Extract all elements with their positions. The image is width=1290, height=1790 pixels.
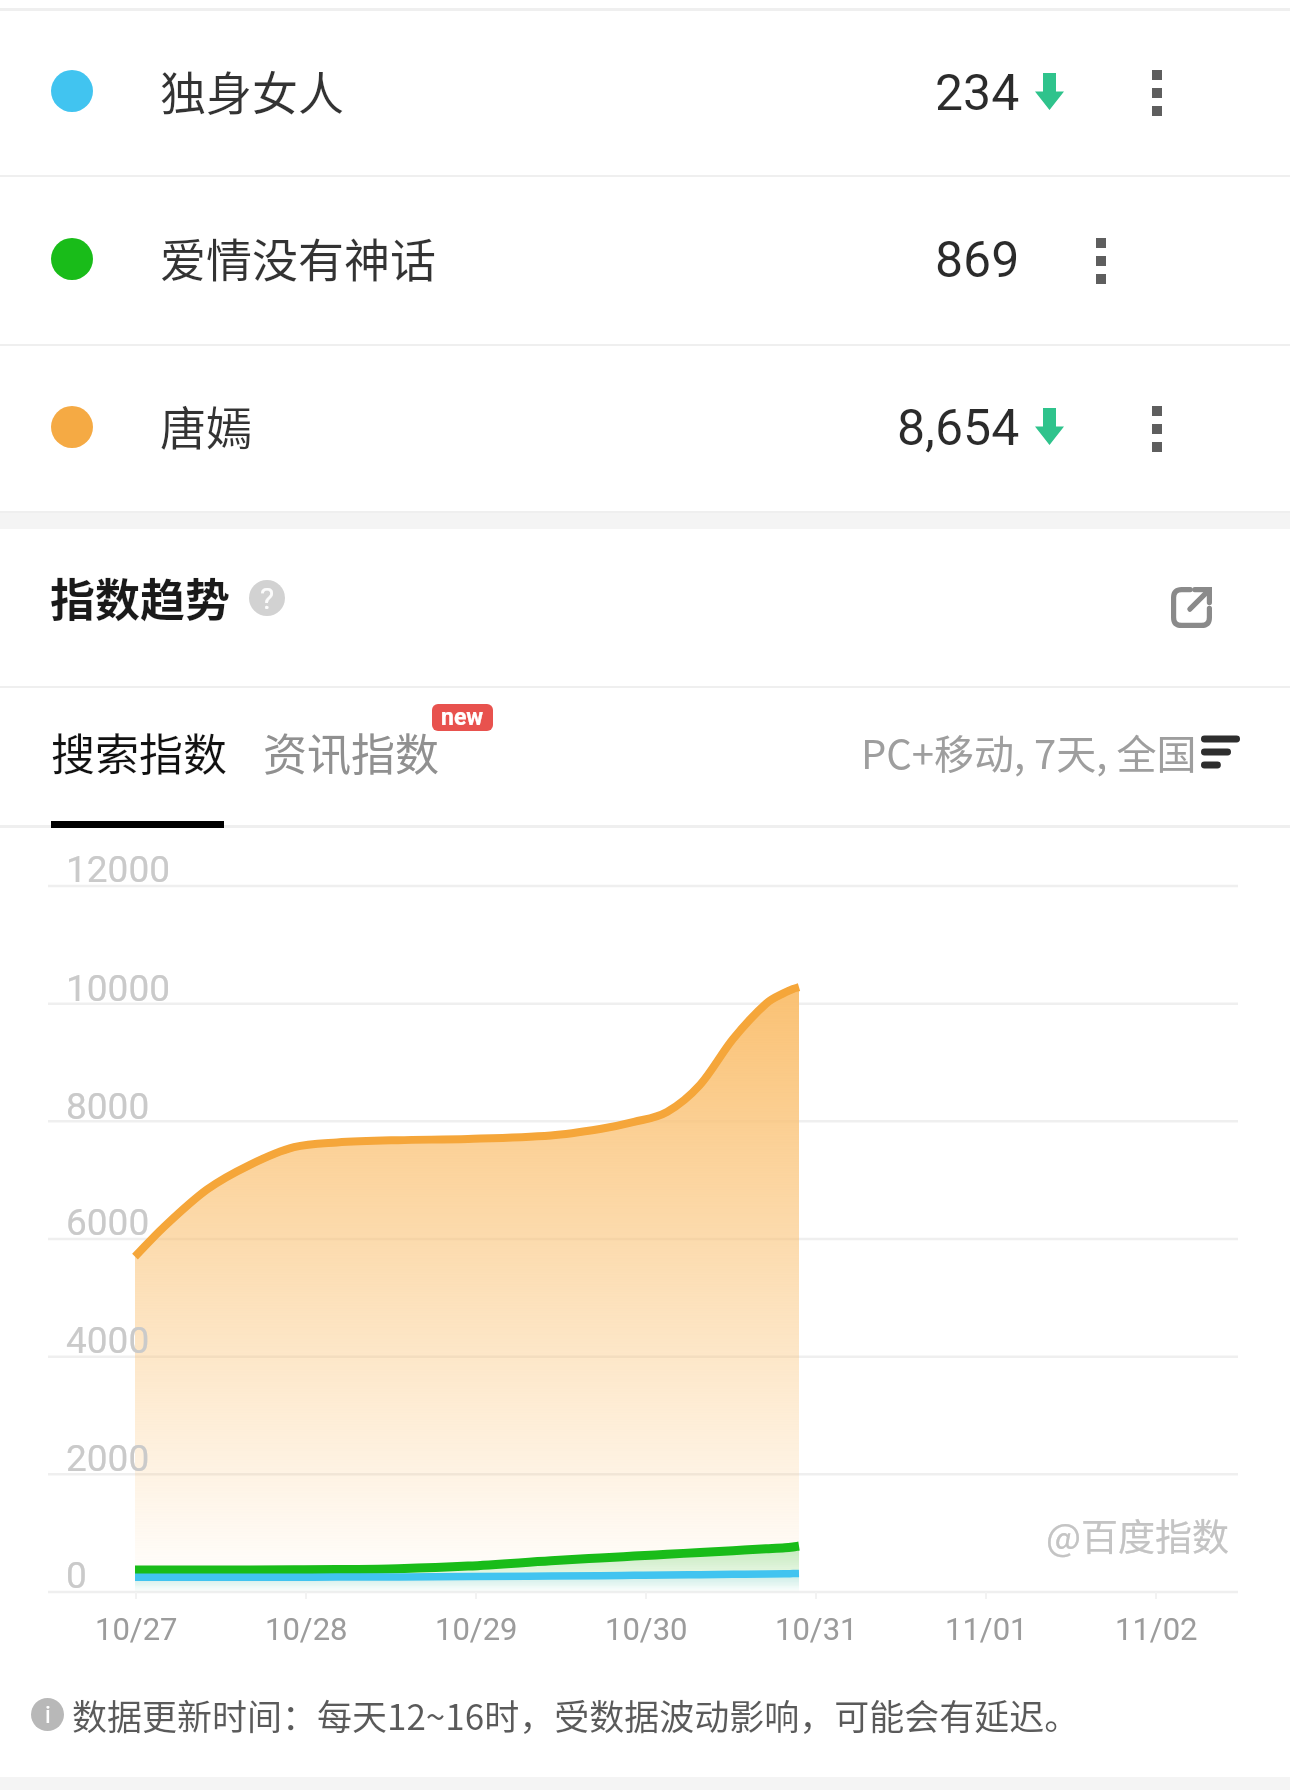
button[interactable]: 爱情没有神话 [0, 177, 1290, 344]
button[interactable]: 独身女人 [0, 11, 1290, 175]
staticText: 8,654 [897, 399, 1020, 458]
staticText: 10/28 [265, 1611, 348, 1647]
staticText: 10/29 [435, 1611, 518, 1647]
staticText: PC+移动, 7天, 全国 [861, 723, 1197, 781]
staticText: 10/27 [95, 1611, 178, 1647]
staticText: 独身女人 [160, 57, 344, 124]
staticText: 10000 [66, 967, 170, 1010]
staticText: 8000 [66, 1085, 150, 1128]
staticText: 数据更新时间：每天12~16时，受数据波动影响，可能会有延迟。 [72, 1689, 1080, 1740]
staticText: 2000 [66, 1437, 150, 1480]
button[interactable]: 唐嫣 [0, 346, 1290, 511]
staticText: 指数趋势 [50, 565, 231, 630]
staticText: 搜索指数 [51, 720, 227, 784]
staticText: 234 [935, 64, 1020, 123]
staticText: 唐嫣 [160, 392, 252, 459]
staticText: 4000 [66, 1319, 150, 1362]
staticText: 11/02 [1115, 1611, 1198, 1647]
staticText: 10/30 [605, 1611, 688, 1647]
button[interactable]: More options [1112, 379, 1202, 479]
button[interactable]: Open in new window [1145, 561, 1237, 653]
button[interactable]: 搜索指数 [51, 702, 227, 802]
button[interactable]: PC+移动, 7天, 全国 [861, 723, 1240, 781]
staticText: 爱情没有神话 [160, 224, 436, 291]
button[interactable]: More options [1056, 211, 1146, 311]
button[interactable]: More options [1112, 43, 1202, 143]
staticText: 12000 [66, 848, 170, 891]
staticText: 869 [935, 231, 1020, 290]
staticText: new [441, 704, 484, 731]
staticText: i [45, 1701, 51, 1729]
staticText: ? [260, 581, 275, 616]
button[interactable]: 资讯指数 [263, 702, 439, 802]
staticText: 11/01 [945, 1611, 1028, 1647]
button[interactable]: Help [249, 580, 285, 616]
staticText: 6000 [66, 1201, 150, 1244]
staticText: 资讯指数 [263, 720, 439, 784]
staticText: 0 [66, 1554, 87, 1597]
staticText: @百度指数 [1046, 1508, 1230, 1558]
staticText: 10/31 [775, 1611, 858, 1647]
